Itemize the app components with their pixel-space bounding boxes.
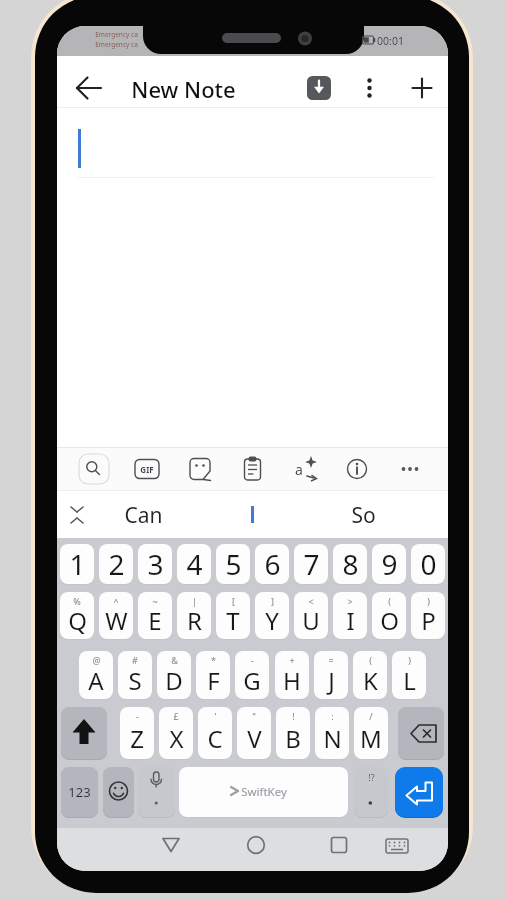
staticText: H: [283, 664, 301, 697]
button[interactable]: 6: [255, 544, 289, 584]
button[interactable]: (: [372, 592, 406, 639]
staticText: !?: [368, 771, 375, 783]
button[interactable]: £: [159, 707, 193, 759]
button[interactable]: ~: [138, 592, 172, 639]
staticText: %: [73, 595, 81, 607]
staticText: New Note: [131, 74, 236, 104]
button[interactable]: [138, 767, 175, 817]
staticText: 123: [68, 783, 91, 801]
staticText: +: [289, 654, 295, 666]
button[interactable]: %: [60, 592, 94, 639]
staticText: K: [363, 664, 378, 697]
button[interactable]: [65, 64, 113, 112]
button[interactable]: ^: [99, 592, 133, 639]
staticText: a: [295, 460, 303, 479]
button[interactable]: [337, 449, 377, 489]
staticText: So: [351, 501, 376, 530]
button[interactable]: [379, 830, 415, 868]
staticText: 4: [186, 545, 203, 583]
staticText: Q: [68, 604, 87, 637]
staticText: @: [92, 654, 101, 666]
button[interactable]: #: [118, 651, 152, 699]
button[interactable]: &: [157, 651, 191, 699]
staticText: ^: [113, 595, 119, 607]
staticText: £: [173, 710, 179, 722]
staticText: 6: [264, 545, 281, 583]
button[interactable]: 2: [99, 544, 133, 584]
button[interactable]: [222, 500, 283, 530]
staticText: W: [105, 604, 128, 637]
button[interactable]: >: [333, 592, 367, 639]
staticText: 2: [108, 545, 125, 583]
button[interactable]: Can: [103, 500, 183, 530]
button[interactable]: [395, 767, 443, 817]
button[interactable]: [390, 449, 430, 489]
button[interactable]: 4: [177, 544, 211, 584]
button[interactable]: ): [392, 651, 426, 699]
staticText: [: [232, 595, 235, 607]
button[interactable]: [233, 449, 273, 489]
button[interactable]: [285, 449, 325, 489]
button[interactable]: 7: [294, 544, 328, 584]
button[interactable]: +: [275, 651, 309, 699]
button[interactable]: [61, 767, 98, 817]
button[interactable]: [61, 707, 107, 759]
button[interactable]: -: [120, 707, 154, 759]
button[interactable]: [297, 66, 341, 110]
staticText: 5: [225, 545, 242, 583]
button[interactable]: [63, 499, 91, 531]
button[interactable]: :: [315, 707, 349, 759]
button[interactable]: [401, 66, 445, 110]
staticText: V: [247, 722, 262, 755]
button[interactable]: (: [353, 651, 387, 699]
button[interactable]: ': [198, 707, 232, 759]
staticText: E: [148, 604, 162, 637]
button[interactable]: 0: [411, 544, 445, 584]
button[interactable]: [153, 830, 189, 868]
staticText: 1: [69, 545, 86, 583]
button[interactable]: @: [79, 651, 113, 699]
button[interactable]: ": [237, 707, 271, 759]
staticText: Z: [130, 722, 144, 755]
button[interactable]: <: [294, 592, 328, 639]
button[interactable]: 3: [138, 544, 172, 584]
staticText: #: [132, 654, 138, 666]
button[interactable]: /: [354, 707, 388, 759]
button[interactable]: [349, 66, 391, 110]
button[interactable]: [: [216, 592, 250, 639]
staticText: ): [427, 595, 430, 607]
button[interactable]: [321, 830, 357, 868]
staticText: Emergency ca: [95, 40, 138, 49]
button[interactable]: [103, 767, 134, 817]
button[interactable]: -: [235, 651, 269, 699]
button[interactable]: [127, 449, 167, 489]
button[interactable]: So: [323, 500, 403, 530]
staticText: =: [328, 654, 334, 666]
staticText: /: [369, 710, 373, 722]
button[interactable]: |: [177, 592, 211, 639]
button[interactable]: =: [314, 651, 348, 699]
staticText: L: [403, 664, 416, 697]
staticText: |: [192, 595, 197, 607]
staticText: ~: [152, 595, 158, 607]
button[interactable]: 5: [216, 544, 250, 584]
button[interactable]: 9: [372, 544, 406, 584]
button[interactable]: [398, 707, 444, 759]
button[interactable]: [179, 767, 348, 817]
button[interactable]: ): [411, 592, 445, 639]
button[interactable]: *: [196, 651, 230, 699]
staticText: B: [285, 722, 301, 755]
button[interactable]: [180, 449, 220, 489]
staticText: <: [308, 595, 314, 607]
staticText: SwiftKey: [241, 784, 287, 800]
button[interactable]: !: [276, 707, 310, 759]
button[interactable]: 1: [60, 544, 94, 584]
button[interactable]: [238, 830, 274, 868]
button[interactable]: ]: [255, 592, 289, 639]
button[interactable]: [74, 449, 114, 489]
button[interactable]: 8: [333, 544, 367, 584]
staticText: Emergency ca: [95, 30, 138, 39]
staticText: ": [252, 710, 256, 722]
button[interactable]: [354, 767, 388, 817]
staticText: G: [243, 664, 261, 697]
